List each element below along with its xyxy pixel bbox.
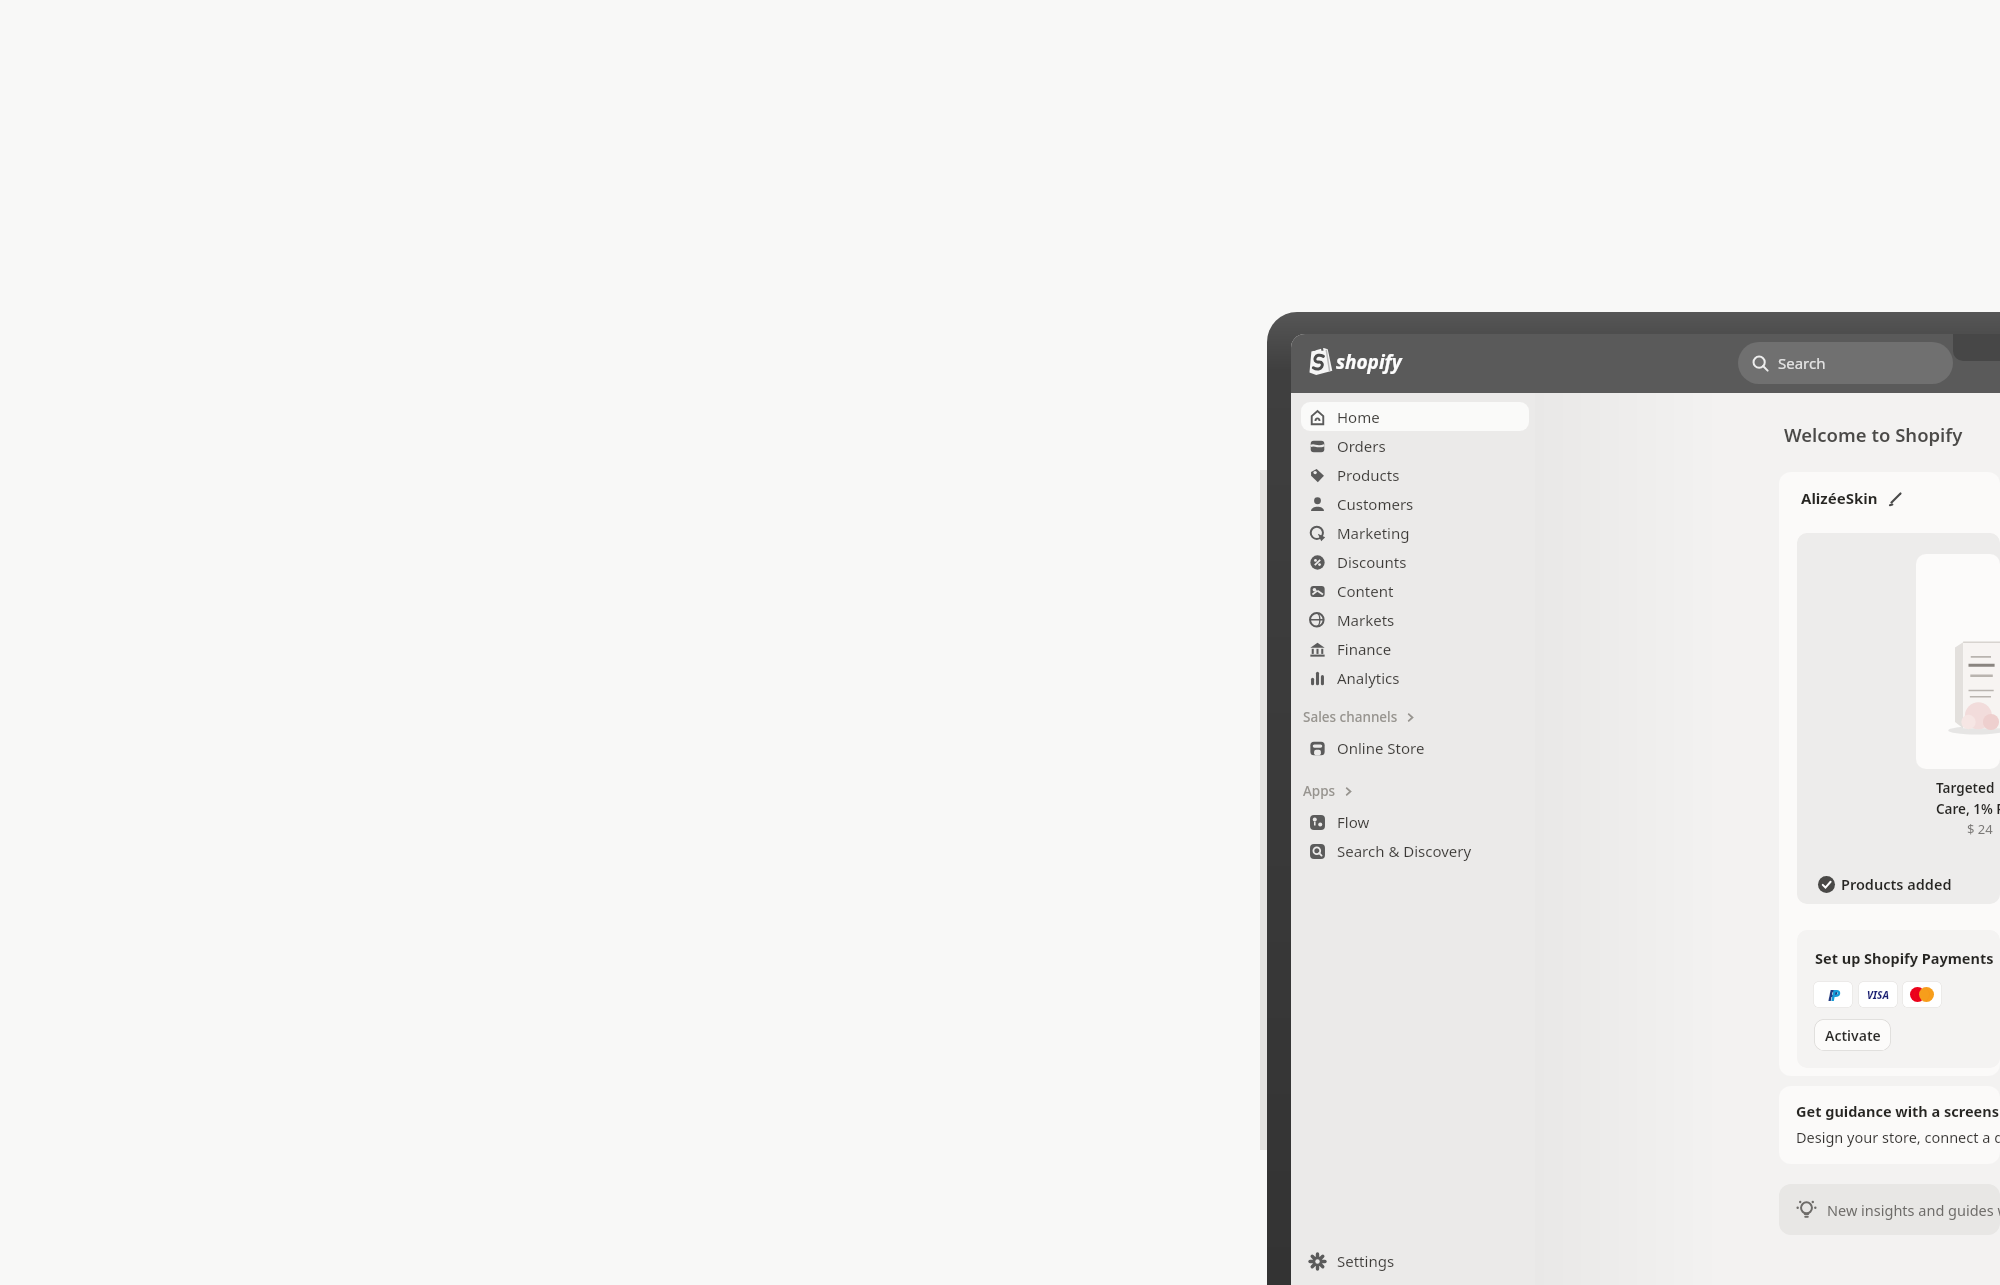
staticText: Marketing — [1337, 523, 1410, 543]
staticText: Apps — [1303, 782, 1336, 800]
button[interactable]: Marketing — [1301, 518, 1529, 547]
staticText: Targeted — [1936, 779, 1995, 797]
button[interactable]: Markets — [1301, 605, 1529, 634]
button[interactable]: Activate — [1814, 1019, 1891, 1051]
staticText: Activate — [1825, 1026, 1881, 1045]
button[interactable]: Content — [1301, 576, 1529, 605]
staticText: Sales channels — [1303, 708, 1398, 726]
staticText: Design your store, connect a domain — [1796, 1127, 2000, 1147]
button[interactable]: Orders — [1301, 431, 1529, 460]
staticText: Products added — [1841, 874, 1952, 894]
staticText: New insights and guides will appear — [1827, 1200, 2000, 1220]
staticText: Discounts — [1337, 552, 1407, 572]
staticText: Flow — [1337, 812, 1370, 832]
staticText: AlizéeSkin — [1801, 488, 1878, 508]
button[interactable]: Customers — [1301, 489, 1529, 518]
staticText: Set up Shopify Payments — [1815, 948, 1994, 968]
staticText: Home — [1337, 407, 1380, 427]
staticText: Search & Discovery — [1337, 841, 1472, 861]
button[interactable]: Online Store — [1301, 733, 1529, 762]
button[interactable] — [1916, 554, 2000, 769]
staticText: Get guidance with a screenshare — [1796, 1101, 2000, 1121]
button[interactable]: Flow — [1301, 807, 1529, 836]
staticText: Finance — [1337, 639, 1392, 659]
staticText: Orders — [1337, 436, 1386, 456]
button[interactable]: Search & Discovery — [1301, 836, 1529, 865]
staticText: Search — [1778, 353, 1826, 373]
staticText: $ 24 — [1967, 820, 1993, 838]
button[interactable] — [1902, 981, 1942, 1008]
button[interactable]: Sales channels — [1301, 704, 1481, 730]
staticText: shopify — [1336, 349, 1402, 375]
staticText: VISA — [1867, 988, 1889, 1002]
staticText: Online Store — [1337, 738, 1425, 758]
button[interactable]: Discounts — [1301, 547, 1529, 576]
button[interactable]: New insights and guides will appear — [1779, 1184, 2000, 1235]
button[interactable]: VISA — [1858, 981, 1898, 1008]
staticText: Settings — [1337, 1251, 1395, 1271]
staticText: P — [1828, 985, 1838, 1005]
staticText: Welcome to Shopify — [1784, 422, 1963, 446]
button[interactable]: Home — [1301, 402, 1529, 431]
staticText: Products — [1337, 465, 1400, 485]
staticText: Care, 1% Retinol — [1936, 800, 2000, 818]
staticText: P — [1831, 985, 1841, 1005]
button[interactable]: Get guidance with a screenshare — [1779, 1086, 2000, 1164]
button[interactable]: Settings — [1301, 1246, 1529, 1275]
button[interactable]: Products — [1301, 460, 1529, 489]
button[interactable]: Search — [1738, 342, 1953, 384]
staticText: Analytics — [1337, 668, 1400, 688]
button[interactable]: Apps — [1301, 778, 1481, 804]
staticText: Markets — [1337, 610, 1395, 630]
button[interactable]: Analytics — [1301, 663, 1529, 692]
button[interactable]: Finance — [1301, 634, 1529, 663]
button[interactable]: P — [1813, 981, 1853, 1008]
staticText: Customers — [1337, 494, 1414, 514]
staticText: Content — [1337, 581, 1394, 601]
button[interactable] — [1887, 489, 1905, 507]
